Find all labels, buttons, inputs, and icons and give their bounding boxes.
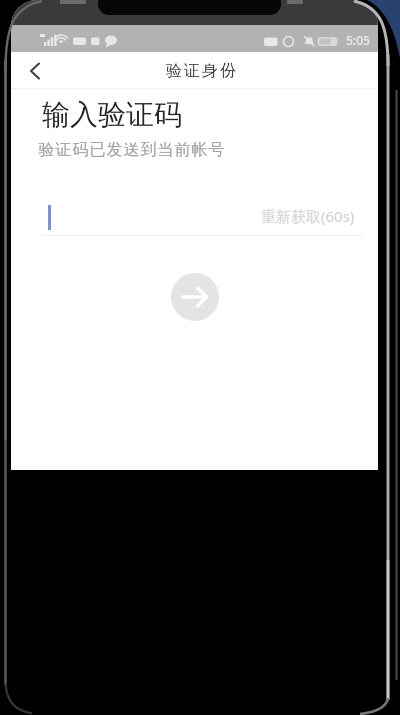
staticText: 输入验证码 [42, 97, 182, 132]
button[interactable]: 重新获取(60s) [261, 206, 355, 226]
staticText: 验证身份 [165, 61, 237, 81]
button[interactable] [11, 52, 59, 89]
button[interactable] [171, 273, 219, 321]
staticText: 5:05 [346, 32, 370, 48]
staticText: 验证码已发送到当前帐号 [38, 140, 225, 160]
